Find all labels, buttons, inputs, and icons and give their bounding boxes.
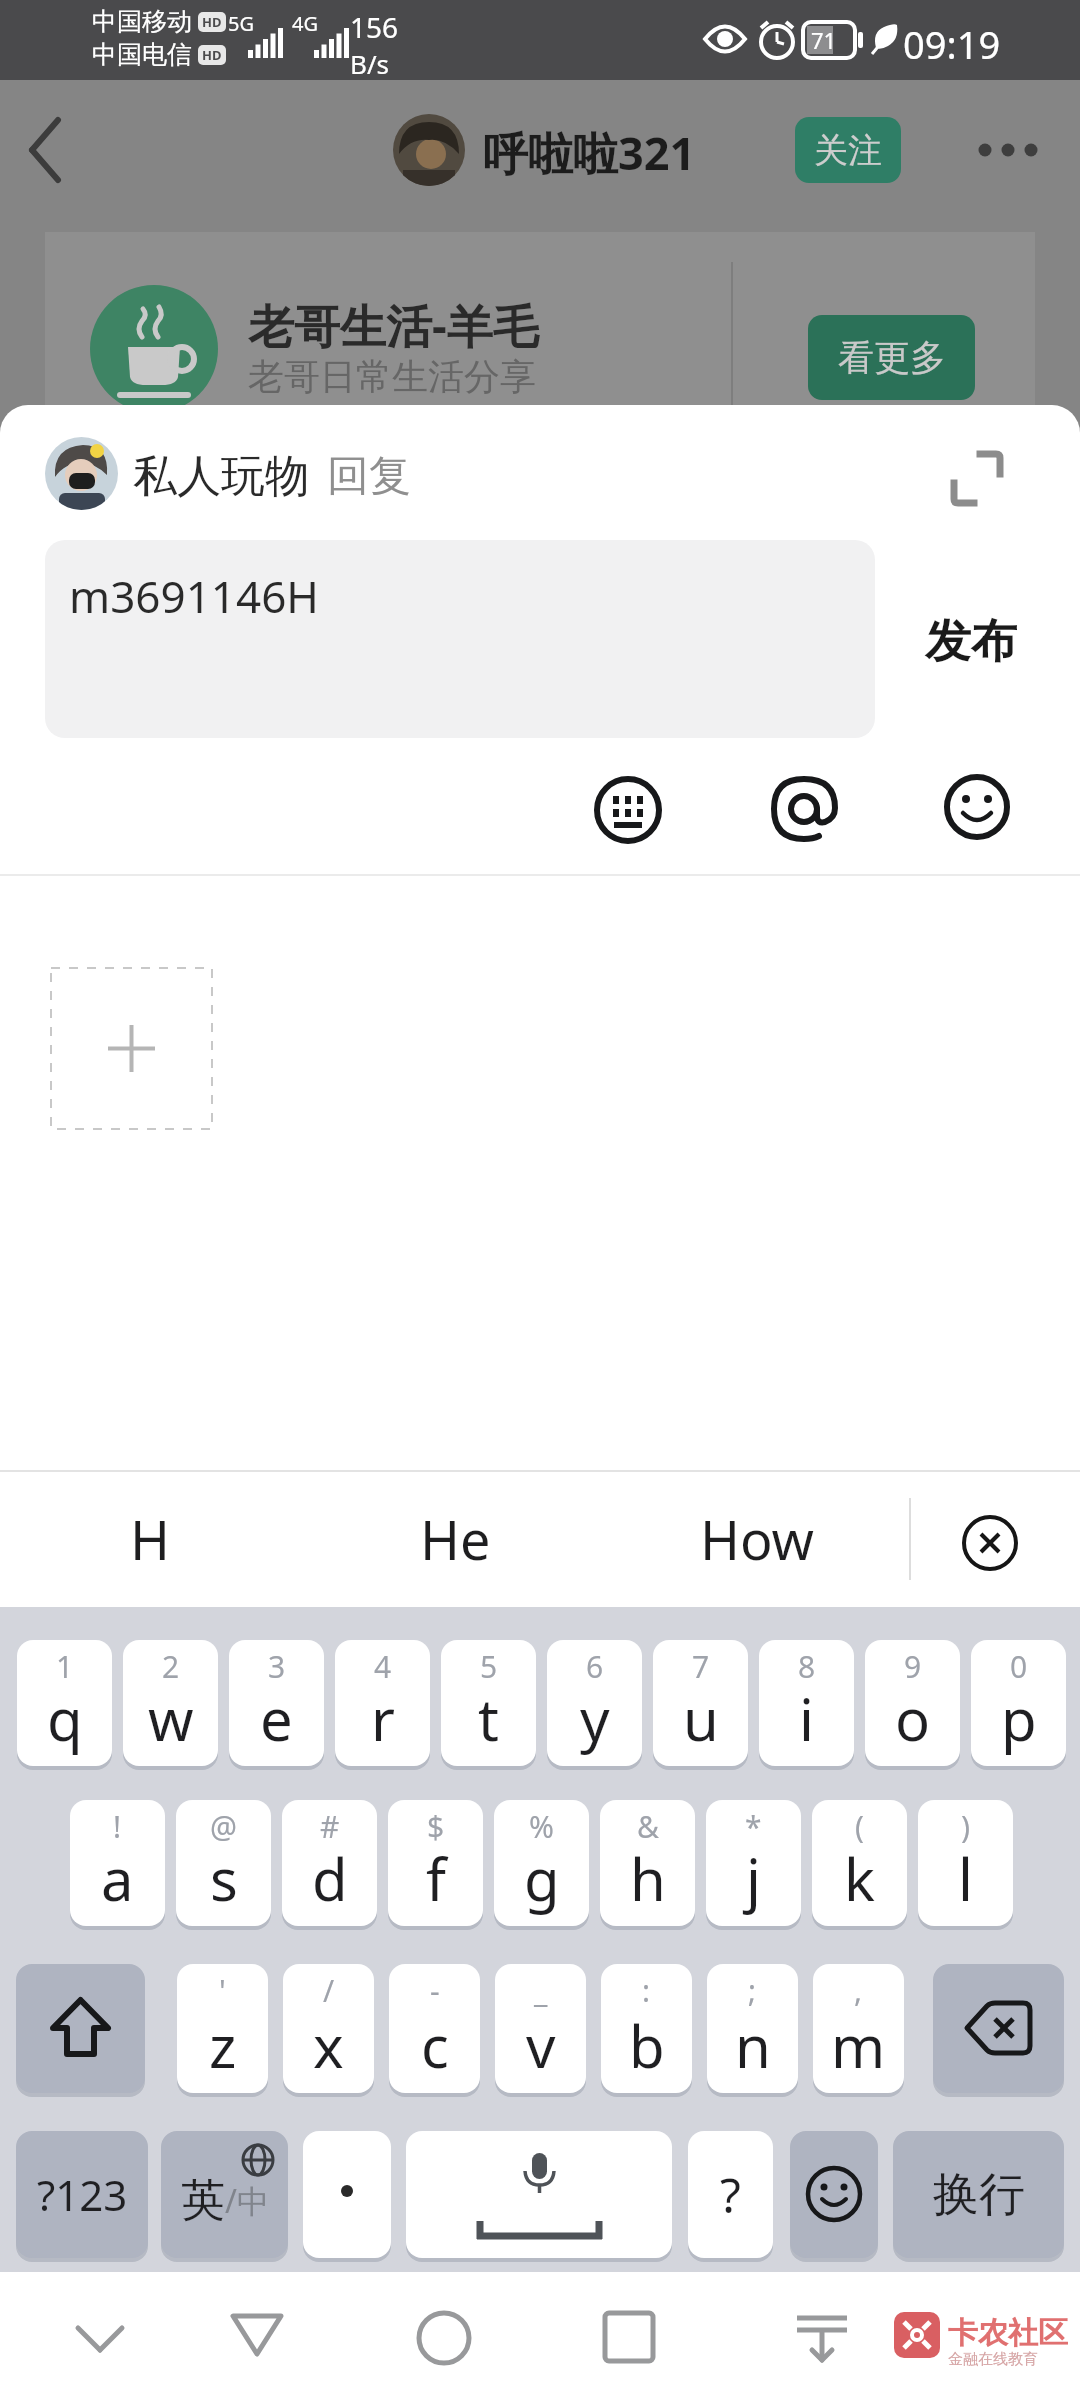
staticText: 156 [350,8,399,46]
staticText: 中国移动 [92,6,192,37]
button[interactable]: 发布 [925,613,1017,671]
staticText: - [430,1970,440,2011]
staticText: 0 [1010,1646,1028,1687]
button[interactable]: ! [70,1800,165,1926]
button[interactable]: - [389,1964,480,2093]
staticText: x [313,2006,344,2085]
staticText: y [580,1679,610,1758]
button[interactable]: ?123 [16,2131,148,2258]
staticText: z [209,2006,237,2085]
button[interactable]: / [283,1964,374,2093]
staticText: 7 [692,1646,710,1687]
button[interactable] [406,2302,482,2374]
button[interactable] [16,1964,145,2093]
button[interactable]: 0 [971,1640,1066,1766]
button[interactable]: ; [707,1964,798,2093]
staticText: ( [855,1806,864,1847]
staticText: H [130,1502,171,1576]
button[interactable] [784,2302,860,2374]
button[interactable]: % [494,1800,589,1926]
staticText: t [478,1679,499,1758]
staticText: u [683,1679,719,1758]
staticText: ; [748,1970,757,2011]
staticText: 英 [181,2173,225,2228]
button[interactable] [940,443,1012,515]
staticText: h [630,1839,666,1918]
staticText: @ [210,1806,237,1847]
staticText: 金融在线教育 [948,2350,1038,2369]
button[interactable]: 9 [865,1640,960,1766]
staticText: He [420,1502,491,1576]
button[interactable]: _ [495,1964,586,2093]
staticText: l [958,1839,973,1918]
staticText: % [529,1806,554,1847]
button[interactable] [594,776,662,844]
staticText: b [629,2006,665,2085]
staticText: 1 [56,1646,74,1687]
button[interactable]: ) [918,1800,1013,1926]
staticText: c [421,2006,449,2085]
button[interactable]: : [601,1964,692,2093]
staticText: 5 [480,1646,498,1687]
button[interactable] [406,2131,672,2258]
button[interactable]: , [813,1964,904,2093]
button[interactable]: 8 [759,1640,854,1766]
staticText: 关注 [814,129,882,172]
button[interactable]: 7 [653,1640,748,1766]
button[interactable]: 换行 [893,2131,1064,2258]
button[interactable] [943,774,1011,842]
staticText: 回复 [327,450,411,503]
button[interactable]: 4 [335,1640,430,1766]
staticText: 老哥生活-羊毛 [248,294,539,357]
staticText: 09:19 [903,18,1001,70]
staticText: j [746,1839,761,1918]
button[interactable]: ' [177,1964,268,2093]
button[interactable]: & [600,1800,695,1926]
button[interactable] [591,2302,667,2374]
staticText: i [799,1679,814,1758]
button[interactable]: ( [812,1800,907,1926]
staticText: 老哥日常生活分享 [248,354,536,399]
button[interactable]: How [672,1470,842,1607]
button[interactable] [50,967,213,1130]
staticText: _ [534,1970,548,2011]
button[interactable]: 关注 [795,117,901,183]
staticText: m3691146H [69,566,319,626]
button[interactable]: $ [388,1800,483,1926]
button[interactable] [219,2302,295,2374]
button[interactable] [62,2302,138,2374]
button[interactable] [303,2131,391,2258]
staticText: d [312,1839,348,1918]
staticText: HD [202,46,222,64]
staticText: : [642,1970,651,2011]
button[interactable]: 看更多 [808,315,975,400]
staticText: m [831,2006,886,2085]
staticText: s [210,1839,238,1918]
staticText: 6 [586,1646,604,1687]
button[interactable]: * [706,1800,801,1926]
button[interactable]: He [385,1470,525,1607]
staticText: , [854,1970,863,2011]
staticText: B/s [350,46,390,81]
button[interactable]: H [90,1470,210,1607]
button[interactable] [960,1515,1020,1571]
staticText: HD [202,13,222,31]
button[interactable] [933,1964,1064,2093]
staticText: 8 [798,1646,816,1687]
button[interactable]: 3 [229,1640,324,1766]
button[interactable]: m3691146H [45,540,875,738]
button[interactable]: 2 [123,1640,218,1766]
button[interactable]: 英 [161,2131,288,2258]
button[interactable]: 6 [547,1640,642,1766]
button[interactable]: 5 [441,1640,536,1766]
button[interactable] [790,2131,878,2258]
button[interactable]: # [282,1800,377,1926]
staticText: f [426,1839,446,1918]
staticText: 中国电信 [92,39,192,70]
staticText: 换行 [933,2166,1025,2224]
button[interactable]: @ [176,1800,271,1926]
staticText: n [735,2006,771,2085]
button[interactable] [771,776,839,844]
button[interactable]: 1 [17,1640,112,1766]
button[interactable]: ? [688,2131,773,2258]
